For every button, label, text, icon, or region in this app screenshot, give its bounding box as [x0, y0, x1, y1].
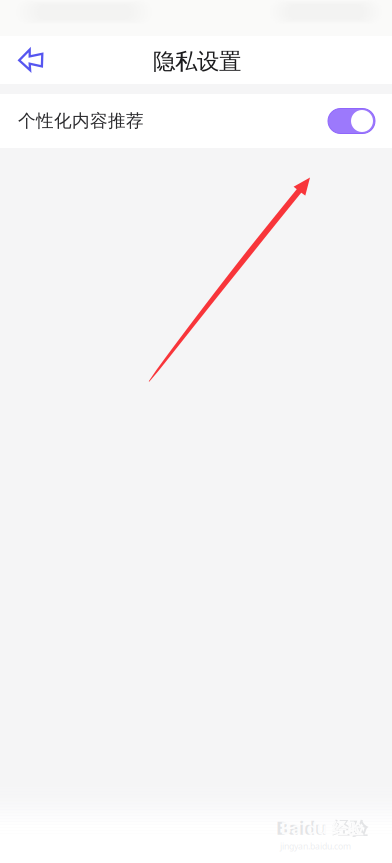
button[interactable]: 返回 — [8, 37, 54, 83]
button[interactable]: 个性化内容推荐 — [0, 94, 392, 148]
staticText: 隐私设置 — [153, 47, 241, 76]
staticText: Baidu 经验 — [276, 816, 368, 840]
staticText: Baidu 经验 — [280, 817, 363, 839]
staticText: jingyan.baidu.com — [280, 840, 351, 852]
staticText: 个性化内容推荐 — [18, 110, 144, 132]
